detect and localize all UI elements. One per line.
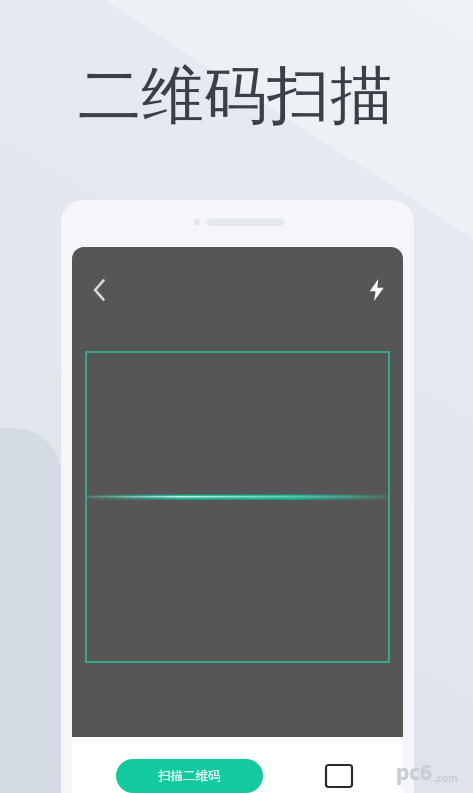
button[interactable]: 扫描二维码 (116, 759, 263, 793)
staticText: 扫描二维码 (158, 768, 221, 784)
button[interactable]: Back (78, 268, 122, 312)
staticText: 二维码扫描 (78, 56, 393, 135)
staticText: .com (434, 771, 458, 785)
staticText: pc6 (396, 758, 433, 787)
button[interactable]: Flash (355, 268, 397, 312)
button[interactable]: Album (322, 765, 356, 793)
